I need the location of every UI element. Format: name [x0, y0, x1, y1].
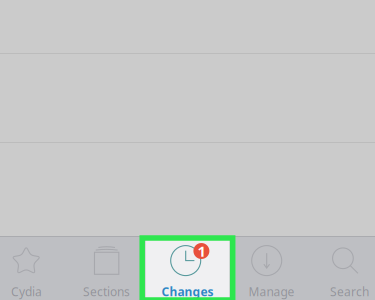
staticText: Manage: [248, 284, 294, 299]
button[interactable]: Manage: [229, 237, 310, 300]
staticText: 1: [197, 241, 205, 261]
staticText: Cydia: [11, 284, 42, 299]
staticText: Changes: [161, 284, 213, 299]
button[interactable]: Sections: [64, 237, 145, 300]
button[interactable]: Cydia: [0, 237, 64, 300]
staticText: Sections: [83, 284, 130, 299]
button[interactable]: 1: [145, 237, 229, 300]
staticText: Search: [330, 284, 369, 299]
button[interactable]: Search: [310, 237, 375, 300]
